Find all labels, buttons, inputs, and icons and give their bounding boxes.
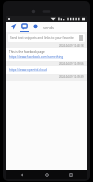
staticText: https://www.openttd.cloud	[9, 68, 47, 72]
staticText: Send text snippets and links to your fav…	[10, 36, 78, 40]
button[interactable]: SMS	[19, 22, 30, 32]
staticText: https://www.facebook.com/something	[9, 55, 64, 59]
button[interactable]: Back	[13, 170, 31, 179]
button[interactable]: Recents	[62, 170, 80, 179]
button[interactable]: Send text snippets and links to your fav…	[8, 34, 85, 42]
staticText: 2024-04-09 12:40:18	[59, 44, 84, 48]
button[interactable]: Pushes	[8, 22, 19, 32]
button[interactable]: This is the facebook page	[6, 48, 87, 61]
button[interactable]: https://www.openttd.cloud	[6, 66, 87, 74]
staticText: sends	[43, 25, 85, 30]
staticText: 2024-04-09 12:39:56	[59, 62, 84, 66]
button[interactable]: Home	[38, 170, 56, 179]
staticText: This is the facebook page	[9, 50, 45, 54]
staticText: 2024-04-09 12:39:39	[59, 75, 84, 79]
button[interactable]: People	[30, 22, 41, 32]
